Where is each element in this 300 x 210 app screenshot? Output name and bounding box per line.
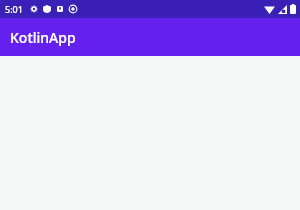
- staticText: 5:01: [5, 3, 23, 15]
- staticText: KotlinApp: [10, 28, 76, 47]
